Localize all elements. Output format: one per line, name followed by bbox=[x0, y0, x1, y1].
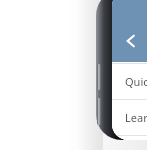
button[interactable]: Settings bbox=[112, 136, 147, 140]
staticText: Learn More bbox=[125, 110, 147, 125]
button[interactable]: Back bbox=[118, 28, 144, 54]
button[interactable]: Learn More bbox=[112, 100, 147, 135]
button[interactable]: Quick Start bbox=[112, 64, 147, 99]
button[interactable]: Volume down bbox=[97, 98, 101, 125]
button[interactable]: Volume up bbox=[97, 64, 101, 90]
staticText: Quick Start bbox=[125, 74, 147, 89]
